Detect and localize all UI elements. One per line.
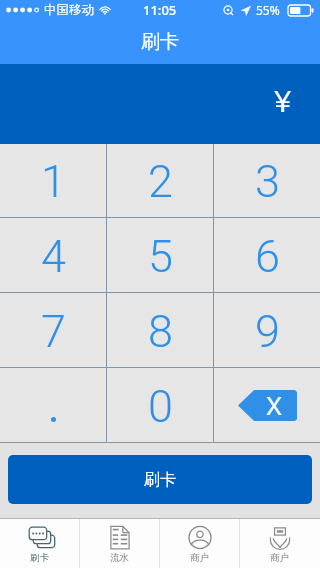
staticText: 6 [255,230,280,283]
button[interactable]: 9 [214,293,320,367]
button[interactable]: 流水 [80,519,159,568]
staticText: X [266,387,283,418]
staticText: 0 [148,380,173,433]
button[interactable]: 8 [107,293,213,367]
staticText: 流水 [110,552,129,564]
other: Backspace [238,390,297,421]
staticText: 商户 [190,552,209,564]
staticText: 11:05 [143,1,177,19]
button[interactable]: 5 [107,218,213,292]
button[interactable]: ¥ [0,64,320,144]
button[interactable]: 1 [0,144,106,217]
staticText: 1 [41,155,66,208]
button[interactable]: 7 [0,293,106,367]
staticText: 4 [41,230,66,283]
button[interactable] [0,368,106,442]
button[interactable]: 商户 [240,519,319,568]
staticText: 刷卡 [141,30,179,54]
staticText: 8 [148,305,173,358]
staticText: 2 [148,155,173,208]
staticText: 7 [41,305,66,358]
staticText: 55% [256,2,280,18]
staticText: ¥ [274,76,292,120]
button[interactable]: 刷卡 [8,455,312,504]
button[interactable]: 刷卡 [0,519,79,568]
button[interactable]: 商户 [160,519,239,568]
staticText: 3 [255,155,280,208]
staticText: 5 [148,230,173,283]
button[interactable]: 6 [214,218,320,292]
button[interactable]: 3 [214,144,320,217]
staticText: 9 [255,305,280,358]
staticText: 刷卡 [144,470,176,490]
button[interactable]: Backspace [214,368,320,442]
staticText: 中国移动 [44,2,94,18]
button[interactable]: 0 [107,368,213,442]
button[interactable]: 2 [107,144,213,217]
button[interactable]: 4 [0,218,106,292]
staticText: 刷卡 [30,552,49,564]
staticText: 商户 [270,552,289,564]
